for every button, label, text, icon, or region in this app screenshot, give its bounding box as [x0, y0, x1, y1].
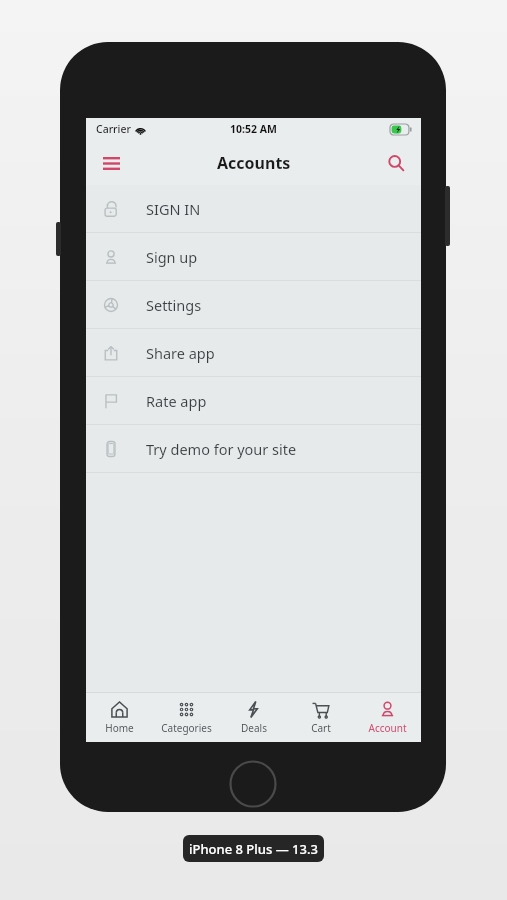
staticText: Home	[105, 721, 134, 735]
staticText: Settings	[146, 295, 202, 315]
button[interactable]: Deals	[220, 693, 287, 742]
staticText: Carrier	[96, 122, 131, 136]
button[interactable]: Share app	[86, 329, 421, 376]
button[interactable]: Home button	[229, 760, 277, 808]
button[interactable]: Menu	[92, 144, 130, 182]
button[interactable]: Home	[86, 693, 153, 742]
button[interactable]: SIGN IN	[86, 185, 421, 232]
button[interactable]: Settings	[86, 281, 421, 328]
staticText: Share app	[146, 343, 215, 363]
staticText: Categories	[161, 721, 212, 735]
staticText: Deals	[241, 721, 267, 735]
staticText: Account	[368, 721, 407, 735]
staticText: 10:52 AM	[230, 122, 277, 136]
staticText: iPhone 8 Plus — 13.3	[189, 840, 318, 858]
staticText: Accounts	[217, 152, 291, 174]
button[interactable]: Cart	[287, 693, 354, 742]
staticText: Rate app	[146, 391, 207, 411]
staticText: Sign up	[146, 247, 198, 267]
staticText: Try demo for your site	[146, 439, 297, 459]
button[interactable]: Search	[377, 144, 415, 182]
staticText: Cart	[311, 721, 331, 735]
button[interactable]: Try demo for your site	[86, 425, 421, 472]
staticText: SIGN IN	[146, 199, 201, 219]
button[interactable]: Categories	[153, 693, 220, 742]
button[interactable]: Sign up	[86, 233, 421, 280]
button[interactable]: Rate app	[86, 377, 421, 424]
button[interactable]: Account	[354, 693, 421, 742]
